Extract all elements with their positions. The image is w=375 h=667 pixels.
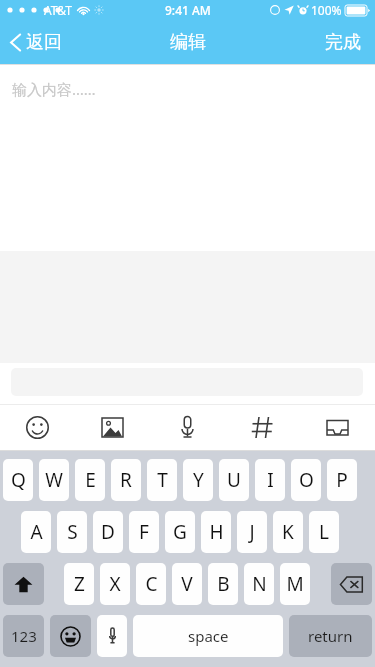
button[interactable]: Backspace <box>331 563 372 605</box>
staticText: N <box>252 571 267 597</box>
staticText: Y <box>193 467 204 493</box>
button[interactable]: Dictation <box>97 615 127 657</box>
staticText: T <box>157 467 168 493</box>
button[interactable]: Inbox <box>300 405 375 450</box>
button[interactable]: return <box>289 615 372 657</box>
button[interactable]: S <box>57 511 87 553</box>
button[interactable]: Shift <box>3 563 44 605</box>
staticText: return <box>308 626 353 646</box>
button[interactable]: X <box>100 563 130 605</box>
staticText: J <box>249 519 255 545</box>
staticText: A <box>30 519 43 545</box>
staticText: M <box>286 571 304 597</box>
button[interactable]: G <box>165 511 195 553</box>
staticText: P <box>336 467 348 493</box>
staticText: S <box>67 519 78 545</box>
staticText: 100% <box>311 2 342 18</box>
staticText: V <box>181 571 193 597</box>
button[interactable]: O <box>291 459 321 501</box>
button[interactable]: Q <box>3 459 33 501</box>
staticText: I <box>267 467 274 493</box>
button[interactable]: T <box>147 459 177 501</box>
staticText: F <box>139 519 149 545</box>
staticText: 9:41 AM <box>165 2 211 18</box>
staticText: AT&T <box>44 2 72 18</box>
button[interactable]: space <box>133 615 283 657</box>
staticText: 返回 <box>26 31 62 54</box>
button[interactable]: Topic <box>225 405 300 450</box>
button[interactable]: K <box>273 511 303 553</box>
button[interactable]: U <box>219 459 249 501</box>
button[interactable]: Voice <box>150 405 225 450</box>
button[interactable]: V <box>172 563 202 605</box>
button[interactable]: M <box>280 563 310 605</box>
staticText: 编辑 <box>170 31 206 54</box>
button[interactable]: 完成 <box>311 20 375 64</box>
staticText: D <box>101 519 115 545</box>
button[interactable]: 123 <box>3 615 44 657</box>
staticText: R <box>120 467 132 493</box>
button[interactable]: N <box>244 563 274 605</box>
button[interactable]: P <box>327 459 357 501</box>
button[interactable]: Emoji <box>0 405 75 450</box>
button[interactable]: W <box>39 459 69 501</box>
button[interactable]: B <box>208 563 238 605</box>
button[interactable]: Image <box>75 405 150 450</box>
staticText: B <box>217 571 230 597</box>
button[interactable]: 输入内容…… <box>0 65 375 251</box>
staticText: K <box>282 519 294 545</box>
button[interactable]: I <box>255 459 285 501</box>
staticText: 输入内容…… <box>12 79 96 99</box>
button[interactable]: C <box>136 563 166 605</box>
staticText: O <box>299 467 314 493</box>
button[interactable]: Y <box>183 459 213 501</box>
button[interactable]: D <box>93 511 123 553</box>
staticText: G <box>173 519 187 545</box>
staticText: H <box>209 519 224 545</box>
staticText: 完成 <box>325 31 361 54</box>
button[interactable]: L <box>309 511 339 553</box>
button[interactable]: Emoji <box>50 615 91 657</box>
button[interactable]: F <box>129 511 159 553</box>
button[interactable]: R <box>111 459 141 501</box>
button[interactable]: H <box>201 511 231 553</box>
button[interactable]: J <box>237 511 267 553</box>
staticText: E <box>85 467 96 493</box>
staticText: U <box>227 467 241 493</box>
staticText: C <box>145 571 158 597</box>
button[interactable]: E <box>75 459 105 501</box>
button[interactable]: Z <box>64 563 94 605</box>
staticText: space <box>188 626 229 646</box>
staticText: Z <box>74 571 85 597</box>
staticText: X <box>109 571 121 597</box>
staticText: Q <box>11 467 26 493</box>
staticText: W <box>45 467 63 493</box>
staticText: 123 <box>11 626 37 646</box>
button[interactable]: 返回 <box>0 20 74 64</box>
staticText: L <box>319 519 329 545</box>
button[interactable]: A <box>21 511 51 553</box>
